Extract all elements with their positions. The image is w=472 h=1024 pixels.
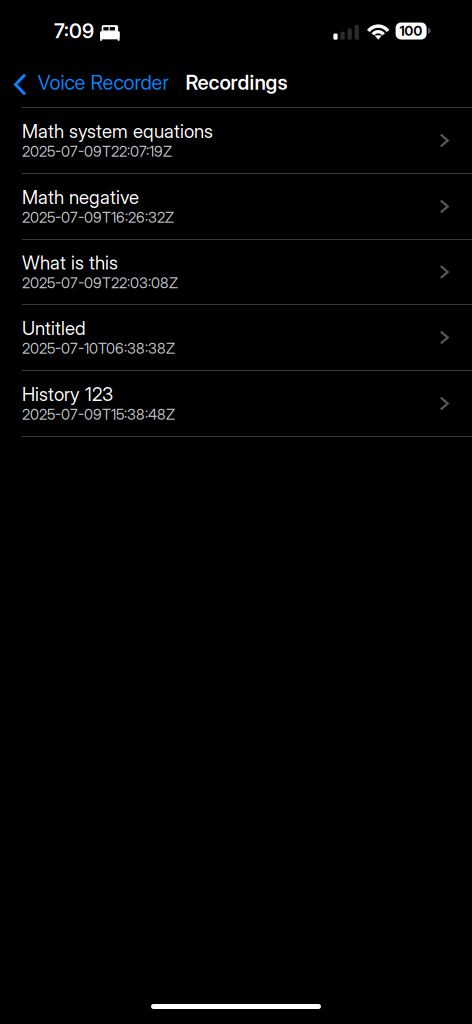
staticText: 7:09: [54, 19, 94, 43]
staticText: 100: [400, 23, 423, 39]
staticText: Math system equations: [22, 120, 213, 142]
button[interactable]: Math system equations: [0, 108, 472, 174]
staticText: Untitled: [22, 317, 86, 339]
staticText: What is this: [22, 251, 118, 274]
staticText: 2025-07-09T15:38:48Z: [22, 405, 175, 423]
staticText: Recordings: [185, 70, 287, 95]
staticText: 2025-07-09T22:03:08Z: [22, 274, 178, 292]
button[interactable]: Untitled: [0, 305, 472, 371]
button[interactable]: Math negative: [0, 174, 472, 240]
staticText: History 123: [22, 383, 113, 405]
button[interactable]: What is this: [0, 240, 472, 305]
staticText: 2025-07-10T06:38:38Z: [22, 339, 175, 357]
button[interactable]: Voice Recorder: [0, 62, 175, 107]
staticText: Voice Recorder: [37, 70, 168, 95]
button[interactable]: History 123: [0, 371, 472, 437]
staticText: Math negative: [22, 186, 139, 208]
staticText: 2025-07-09T16:26:32Z: [22, 208, 174, 226]
staticText: 2025-07-09T22:07:19Z: [22, 142, 172, 160]
